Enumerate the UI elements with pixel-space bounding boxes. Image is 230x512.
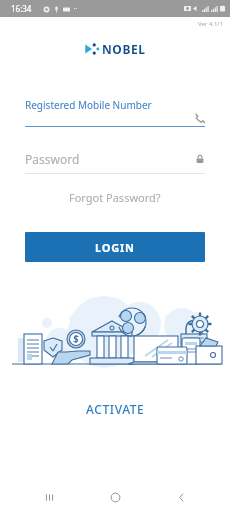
button[interactable]: Forgot Password?	[59, 187, 171, 208]
staticText: NOBEL	[102, 41, 146, 57]
button[interactable]: ACTIVATE	[72, 397, 159, 421]
staticText: 16:34	[11, 3, 32, 14]
staticText: Ver 4.1/1	[198, 20, 224, 28]
staticText: Registered Mobile Number	[25, 98, 152, 112]
staticText: ··	[70, 4, 78, 14]
button[interactable]: LOGIN	[25, 232, 205, 262]
staticText: LOGIN	[95, 240, 135, 255]
button[interactable]: Registered Mobile Number	[25, 98, 205, 127]
staticText: Password	[25, 151, 80, 167]
button[interactable]: Password	[25, 150, 205, 174]
other: Phone	[194, 113, 205, 124]
button[interactable]: Recents	[32, 482, 66, 512]
other: Password visibility	[195, 154, 205, 164]
button[interactable]: Home	[98, 482, 132, 512]
button[interactable]: Back	[164, 482, 198, 512]
